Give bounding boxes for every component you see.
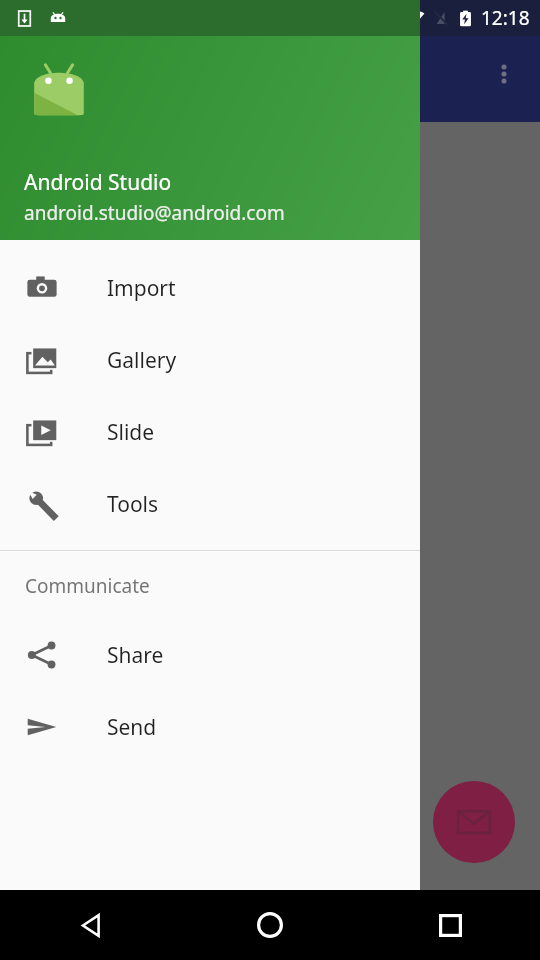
button[interactable]: Import xyxy=(0,252,420,324)
button[interactable]: Gallery xyxy=(0,324,420,396)
staticText: Android Studio xyxy=(24,168,172,197)
button[interactable]: Slide xyxy=(0,396,420,468)
button[interactable]: Recent apps xyxy=(360,890,540,960)
staticText: Slide xyxy=(107,418,155,447)
button[interactable]: Compose email xyxy=(433,781,515,863)
staticText: 12:18 xyxy=(481,5,530,31)
button[interactable]: Home xyxy=(180,890,360,960)
staticText: Tools xyxy=(107,490,159,519)
staticText: Communicate xyxy=(25,573,150,599)
staticText: android.studio@android.com xyxy=(24,200,285,226)
staticText: Send xyxy=(107,713,157,742)
button[interactable]: Tools xyxy=(0,468,420,540)
button[interactable]: Share xyxy=(0,619,420,691)
button[interactable]: More options xyxy=(480,50,528,98)
button[interactable]: Back xyxy=(0,890,180,960)
staticText: Gallery xyxy=(107,346,177,375)
button[interactable]: Send xyxy=(0,691,420,763)
staticText: Import xyxy=(107,274,176,303)
staticText: Share xyxy=(107,641,164,670)
